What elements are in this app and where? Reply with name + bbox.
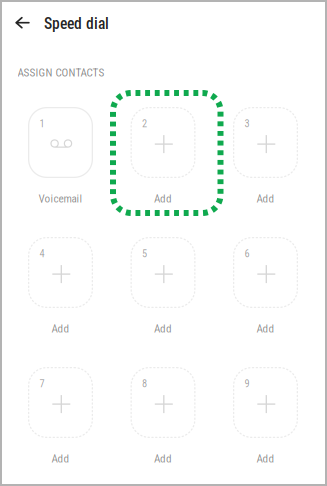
button[interactable]: Back [5, 6, 39, 40]
staticText: 8 [142, 377, 147, 390]
staticText: 7 [39, 377, 44, 390]
staticText: ASSIGN CONTACTS [17, 66, 104, 79]
button[interactable]: 1 [28, 107, 93, 204]
staticText: 1 [39, 117, 44, 130]
staticText: Add [256, 322, 274, 335]
button[interactable]: 7 [28, 367, 93, 464]
staticText: Add [256, 192, 274, 205]
staticText: Add [154, 192, 172, 205]
staticText: Add [256, 452, 274, 465]
staticText: Add [154, 452, 172, 465]
button[interactable]: 4 [28, 237, 93, 334]
staticText: Add [154, 322, 172, 335]
button[interactable]: 9 [233, 367, 298, 464]
staticText: 3 [244, 117, 249, 130]
staticText: 2 [142, 117, 147, 130]
button[interactable]: 5 [130, 237, 195, 334]
button[interactable]: 2 [130, 107, 195, 204]
staticText: Voicemail [38, 192, 82, 205]
staticText: 6 [244, 247, 249, 260]
staticText: Add [51, 322, 69, 335]
staticText: 9 [244, 377, 249, 390]
button[interactable]: 3 [233, 107, 298, 204]
staticText: 5 [142, 247, 147, 260]
staticText: Speed dial [44, 14, 109, 33]
staticText: 4 [39, 247, 44, 260]
button[interactable]: 6 [233, 237, 298, 334]
button[interactable]: 8 [130, 367, 195, 464]
staticText: Add [51, 452, 69, 465]
